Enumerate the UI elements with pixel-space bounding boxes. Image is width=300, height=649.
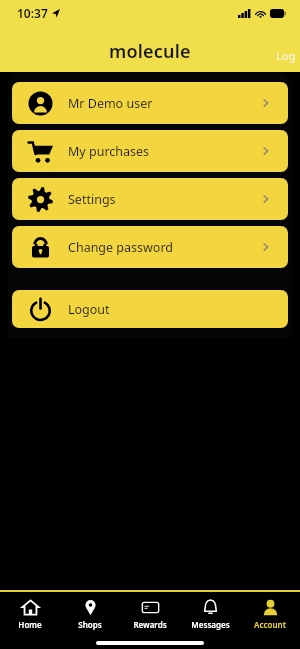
button[interactable]: Mr Demo user: [12, 82, 288, 124]
button[interactable]: Settings: [12, 178, 288, 220]
button[interactable]: Logout: [12, 290, 288, 328]
button[interactable]: Messages: [181, 599, 239, 630]
button[interactable]: Account: [241, 599, 299, 630]
button[interactable]: Home: [1, 599, 59, 630]
staticText: Logout: [68, 301, 258, 318]
button[interactable]: Shops: [61, 599, 119, 630]
staticText: Mr Demo user: [68, 95, 258, 112]
staticText: 10:37: [17, 5, 48, 21]
staticText: My purchases: [68, 143, 258, 160]
staticText: Messages: [191, 619, 230, 630]
staticText: Change password: [68, 239, 258, 256]
staticText: Account: [254, 619, 286, 630]
button[interactable]: Rewards: [121, 599, 179, 630]
staticText: Settings: [68, 191, 258, 208]
staticText: Rewards: [133, 619, 167, 630]
staticText: Shops: [78, 619, 102, 630]
button[interactable]: Log: [276, 48, 296, 63]
button[interactable]: My purchases: [12, 130, 288, 172]
staticText: Home: [18, 619, 42, 630]
staticText: molecule: [109, 39, 191, 64]
button[interactable]: Change password: [12, 226, 288, 268]
